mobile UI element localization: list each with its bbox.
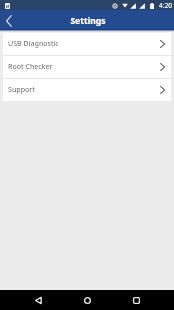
button[interactable]: Support <box>3 79 171 101</box>
button[interactable]: Recent apps <box>116 290 174 310</box>
button[interactable]: Root Checker <box>3 56 171 78</box>
staticText: Root Checker <box>8 61 53 71</box>
staticText: 4:20 <box>159 1 173 10</box>
button[interactable]: Home <box>58 290 116 310</box>
button[interactable]: USB Diagnostic <box>3 33 171 55</box>
button[interactable]: Back <box>0 12 17 29</box>
staticText: USB Diagnostic <box>8 38 59 48</box>
staticText: Settings <box>70 15 106 27</box>
button[interactable]: Back <box>0 290 58 310</box>
staticText: Support <box>8 84 35 94</box>
